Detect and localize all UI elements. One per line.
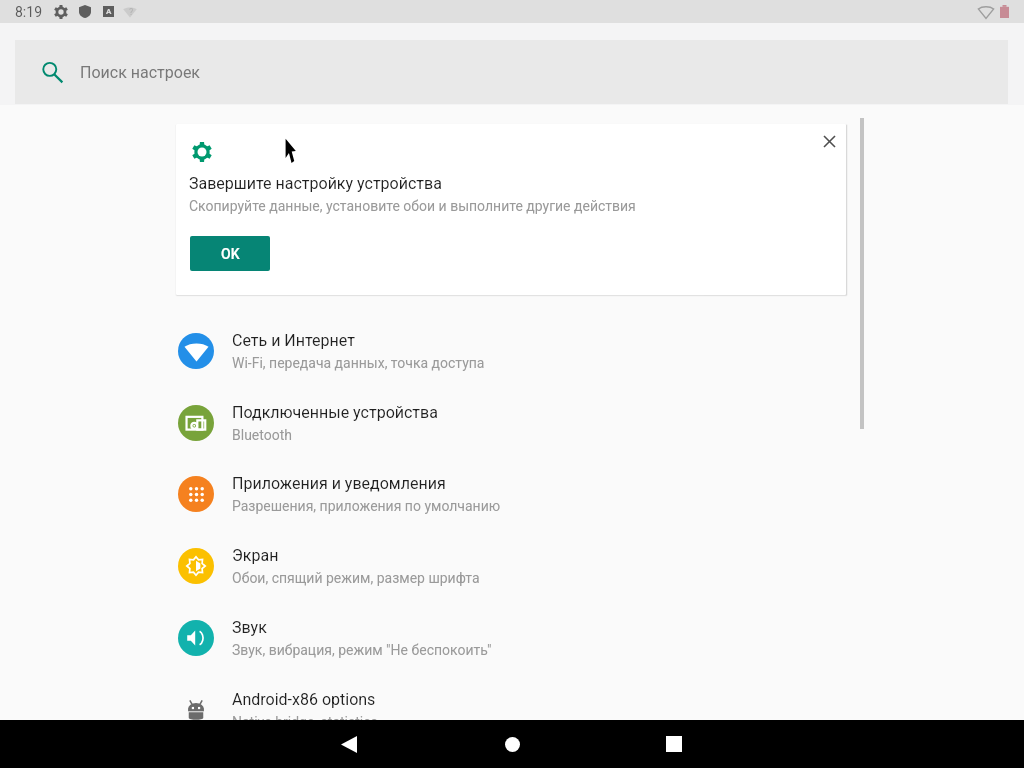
- staticText: Обои, спящий режим, размер шрифта: [232, 570, 480, 586]
- button[interactable]: Android-x86 options: [0, 686, 1024, 757]
- button[interactable]: OK: [190, 236, 270, 271]
- button[interactable]: Поиск настроек: [15, 40, 1008, 104]
- button[interactable]: Dismiss suggestion: [809, 124, 846, 159]
- staticText: Скопируйте данные, установите обои и вып…: [189, 198, 636, 214]
- staticText: Bluetooth: [232, 427, 292, 443]
- staticText: Завершите настройку устройства: [189, 174, 442, 193]
- staticText: Поиск настроек: [80, 63, 201, 82]
- staticText: Сеть и Интернет: [232, 331, 355, 350]
- button[interactable]: Приложения и уведомления: [0, 470, 1024, 541]
- staticText: Приложения и уведомления: [232, 474, 446, 493]
- button[interactable]: Подключенные устройства: [0, 399, 1024, 470]
- button[interactable]: Экран: [0, 542, 1024, 613]
- staticText: OK: [221, 246, 240, 262]
- staticText: Экран: [232, 546, 279, 565]
- button[interactable]: Home: [488, 720, 536, 768]
- staticText: 8:19: [15, 4, 42, 20]
- staticText: Wi-Fi, передача данных, точка доступа: [232, 355, 485, 371]
- staticText: Звук, вибрация, режим "Не беспокоить": [232, 642, 492, 658]
- button[interactable]: Сеть и Интернет: [0, 327, 1024, 398]
- staticText: Android-x86 options: [232, 690, 376, 709]
- button[interactable]: Recent apps: [650, 720, 698, 768]
- button[interactable]: Back: [325, 720, 373, 768]
- staticText: Разрешения, приложения по умолчанию: [232, 498, 501, 514]
- staticText: Native bridge, statistics: [232, 714, 378, 730]
- staticText: A: [106, 7, 112, 16]
- button[interactable]: Звук: [0, 614, 1024, 685]
- staticText: Подключенные устройства: [232, 403, 438, 422]
- staticText: Звук: [232, 618, 267, 637]
- staticText: ?: [129, 7, 134, 18]
